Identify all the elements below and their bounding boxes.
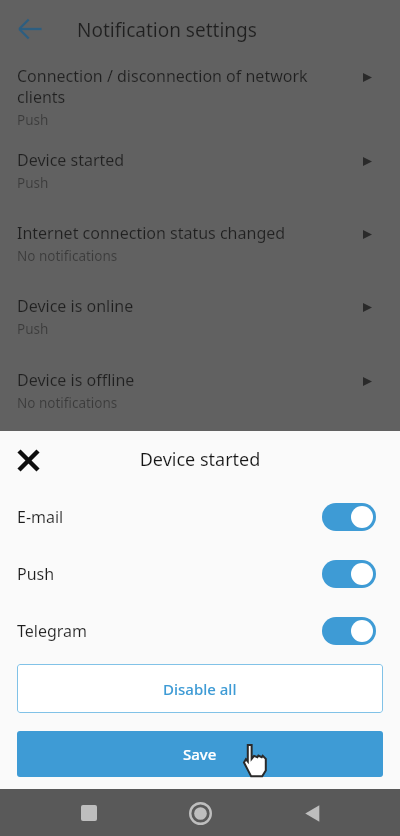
- button[interactable]: Recents: [66, 790, 112, 836]
- staticText: Telegram: [17, 620, 88, 642]
- button[interactable]: Device is offline: [0, 367, 400, 419]
- button[interactable]: Internet connection status changed: [0, 220, 400, 272]
- staticText: Save: [183, 744, 217, 764]
- button[interactable]: Back: [289, 790, 335, 836]
- button[interactable]: Disable all: [17, 664, 383, 713]
- staticText: Device started: [17, 149, 125, 171]
- staticText: Device is online: [17, 295, 134, 317]
- staticText: Device started: [0, 447, 400, 472]
- button[interactable]: Device started: [0, 147, 400, 199]
- staticText: Push: [17, 563, 55, 585]
- button[interactable]: Close: [11, 443, 45, 477]
- button[interactable]: Back: [12, 11, 48, 47]
- button[interactable]: Connection / disconnection of network cl…: [0, 63, 400, 135]
- button[interactable]: Home: [177, 790, 223, 836]
- staticText: Internet connection status changed: [17, 222, 286, 244]
- button[interactable]: E-mail: [0, 488, 400, 545]
- button[interactable]: Save: [17, 731, 383, 777]
- button[interactable]: Push: [0, 545, 400, 602]
- staticText: Push: [17, 111, 49, 129]
- button[interactable]: Telegram: [0, 602, 400, 659]
- staticText: No notifications: [17, 394, 118, 412]
- staticText: E-mail: [17, 506, 64, 528]
- staticText: No notifications: [17, 247, 118, 265]
- staticText: Disable all: [163, 679, 237, 699]
- staticText: Push: [17, 174, 49, 192]
- button[interactable]: Device is online: [0, 293, 400, 345]
- staticText: Push: [17, 320, 49, 338]
- staticText: Notification settings: [77, 17, 257, 43]
- staticText: Connection / disconnection of network cl…: [17, 65, 308, 108]
- staticText: Device is offline: [17, 369, 135, 391]
